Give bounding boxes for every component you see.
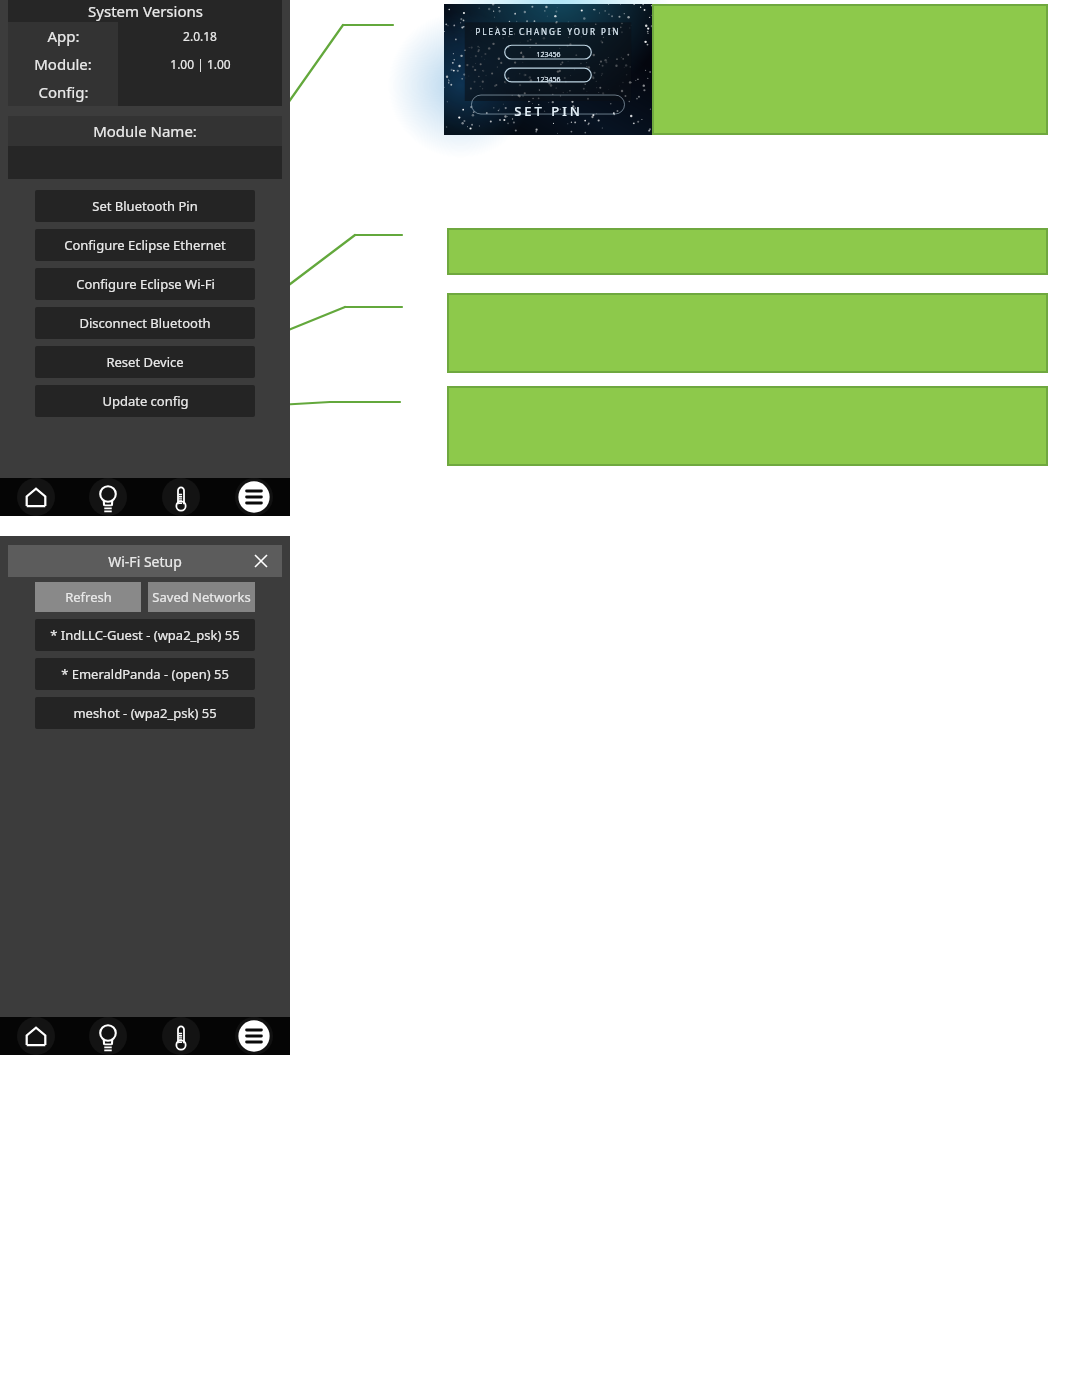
button[interactable]: Menu	[217, 1017, 290, 1055]
staticText: Wi-Fi Setup	[108, 552, 182, 571]
staticText: Disconnect Bluetooth	[79, 314, 211, 332]
staticText: meshot - (wpa2_psk) 55	[73, 704, 217, 722]
button[interactable]: * EmeraldPanda - (open) 55	[35, 658, 255, 690]
button[interactable]: * IndLLC-Guest - (wpa2_psk) 55	[35, 619, 255, 651]
button[interactable]: meshot - (wpa2_psk) 55	[35, 697, 255, 729]
button[interactable]: Disconnect Bluetooth	[35, 307, 255, 339]
staticText: Refresh	[65, 588, 112, 606]
button[interactable]: Climate	[144, 478, 217, 516]
staticText: Saved Networks	[152, 588, 251, 606]
button[interactable]: Menu	[217, 478, 290, 516]
staticText: System Versions	[88, 1, 203, 21]
button[interactable]: Home	[0, 1017, 72, 1055]
staticText: SET PIN	[514, 102, 583, 120]
staticText: Update config	[102, 392, 189, 410]
button[interactable]: Configure Eclipse Wi-Fi	[35, 268, 255, 300]
button[interactable]: Saved Networks	[148, 582, 255, 612]
staticText: Reset Device	[106, 353, 184, 371]
button[interactable]: Reset Device	[35, 346, 255, 378]
staticText: 123456	[536, 50, 561, 60]
staticText: Set Bluetooth Pin	[92, 197, 198, 215]
staticText: Config:	[38, 82, 89, 102]
button[interactable]: Refresh	[35, 582, 141, 612]
button[interactable]: Close	[250, 550, 272, 572]
staticText: Module:	[34, 54, 92, 74]
staticText: 123456	[536, 75, 561, 85]
staticText: * EmeraldPanda - (open) 55	[61, 665, 229, 683]
button[interactable]: Lights	[72, 1017, 144, 1055]
button[interactable]: Set Bluetooth Pin	[35, 190, 255, 222]
staticText: 2.0.18	[183, 28, 217, 44]
staticText: PLEASE CHANGE YOUR PIN	[475, 26, 621, 37]
button[interactable]: Climate	[144, 1017, 217, 1055]
staticText: * IndLLC-Guest - (wpa2_psk) 55	[50, 626, 240, 644]
staticText: Module Name:	[93, 121, 197, 141]
staticText: 1.00 | 1.00	[170, 56, 231, 72]
button[interactable]: Update config	[35, 385, 255, 417]
button[interactable]: Configure Eclipse Ethernet	[35, 229, 255, 261]
staticText: App:	[47, 26, 80, 46]
button[interactable]: Home	[0, 478, 72, 516]
button[interactable]: Lights	[72, 478, 144, 516]
staticText: Configure Eclipse Ethernet	[64, 236, 226, 254]
staticText: Configure Eclipse Wi-Fi	[76, 275, 215, 293]
